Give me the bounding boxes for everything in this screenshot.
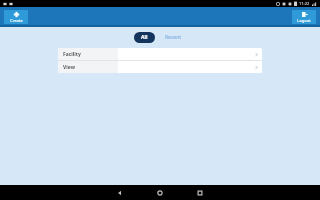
other: Open View selector bbox=[255, 65, 258, 70]
button[interactable]: Create bbox=[4, 10, 28, 24]
staticText: View bbox=[63, 64, 75, 71]
button[interactable]: Facility bbox=[58, 48, 262, 60]
staticText: Facility bbox=[63, 51, 81, 58]
staticText: All bbox=[141, 34, 148, 41]
button[interactable]: Recent apps bbox=[187, 185, 213, 200]
staticText: Create bbox=[10, 18, 23, 23]
button[interactable]: View bbox=[58, 61, 262, 73]
button[interactable]: Home bbox=[147, 185, 173, 200]
other: Open Facility selector bbox=[255, 52, 258, 57]
button[interactable]: All bbox=[134, 32, 155, 43]
staticText: 11:22 bbox=[299, 1, 310, 6]
button[interactable]: Logout bbox=[292, 10, 316, 24]
staticText: Recent bbox=[165, 34, 182, 41]
button[interactable]: Back bbox=[107, 185, 133, 200]
button[interactable]: Recent bbox=[160, 32, 187, 43]
staticText: Logout bbox=[297, 18, 311, 23]
